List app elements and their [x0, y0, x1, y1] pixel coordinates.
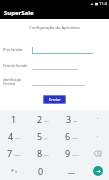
staticText: DEF: [73, 119, 78, 122]
staticText: 8: [37, 147, 43, 159]
button[interactable]: IP do Servidor: [3, 45, 106, 54]
button[interactable]: SuperSale: [0, 6, 109, 19]
staticText: SuperSale: [4, 9, 34, 17]
button[interactable]: 3: [57, 110, 86, 127]
button[interactable]: Backspace: [86, 144, 109, 162]
staticText: -: [97, 115, 99, 122]
button[interactable]: Identificação Terminal: [3, 77, 106, 86]
staticText: JKL: [44, 136, 48, 139]
button[interactable]: 1: [0, 110, 28, 127]
staticText: ABC: [44, 119, 49, 122]
button[interactable]: 9: [57, 144, 86, 162]
staticText: Identificação Terminal: [3, 78, 29, 86]
button[interactable]: 0: [28, 162, 57, 180]
staticText: 2: [37, 113, 43, 125]
staticText: 6: [65, 130, 71, 142]
staticText: 0: [38, 165, 44, 177]
button[interactable]: 6: [57, 127, 86, 144]
button[interactable]: Space: [57, 162, 86, 180]
button[interactable]: Porta do Servidor: [3, 61, 106, 70]
staticText: ,: [97, 132, 99, 139]
staticText: PQRS: [14, 153, 21, 156]
staticText: Enviar: [49, 97, 61, 102]
staticText: WXYZ: [72, 153, 79, 156]
button[interactable]: Enter: [86, 162, 109, 180]
button[interactable]: 8: [28, 144, 57, 162]
staticText: 7: [7, 147, 13, 159]
staticText: 9: [65, 147, 71, 159]
staticText: TUV: [44, 153, 49, 156]
staticText: GHI: [15, 136, 20, 139]
button[interactable]: 5: [28, 127, 57, 144]
staticText: 11:4: [99, 1, 107, 6]
staticText: *: [11, 168, 14, 175]
staticText: 3: [66, 113, 72, 125]
staticText: 5: [37, 130, 43, 142]
staticText: +: [45, 171, 47, 174]
staticText: Configuração do Aplicativo: [0, 25, 109, 30]
staticText: 1: [11, 113, 17, 125]
button[interactable]: 2: [28, 110, 57, 127]
button[interactable]: Enviar: [44, 96, 65, 103]
staticText: Porta do Servidor: [3, 64, 29, 68]
button[interactable]: Symbols: [0, 162, 28, 180]
staticText: MNO: [72, 136, 79, 139]
staticText: IP do Servidor: [3, 48, 29, 52]
button[interactable]: 7: [0, 144, 28, 162]
button[interactable]: 4: [0, 127, 28, 144]
staticText: #: [15, 170, 17, 174]
staticText: 4: [8, 130, 14, 142]
